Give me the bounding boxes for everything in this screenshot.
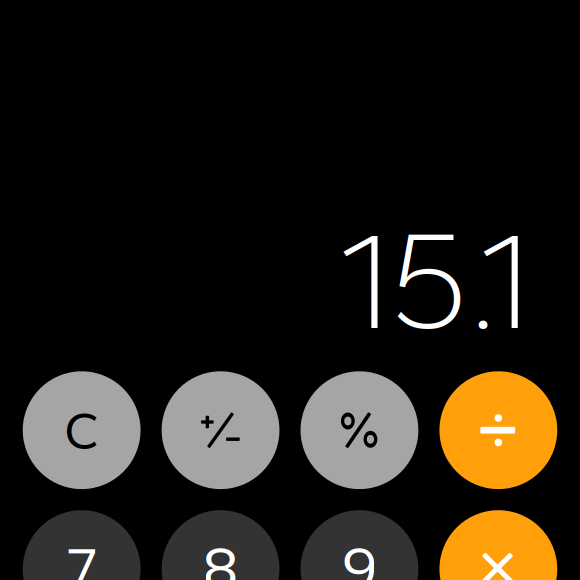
staticText: C xyxy=(64,399,99,461)
button[interactable]: Multiply xyxy=(439,510,557,580)
staticText: 15.1 xyxy=(337,198,531,362)
button[interactable]: 9 xyxy=(301,510,418,580)
staticText: 9 xyxy=(341,532,377,580)
button[interactable]: C xyxy=(23,371,141,489)
staticText: 7 xyxy=(67,532,97,580)
button[interactable]: 8 xyxy=(162,510,279,580)
button[interactable]: Plus Minus xyxy=(162,371,279,489)
button[interactable]: Divide xyxy=(439,371,557,489)
button[interactable]: Percent xyxy=(301,371,418,489)
button[interactable]: 7 xyxy=(23,510,141,580)
staticText: 8 xyxy=(203,532,239,580)
